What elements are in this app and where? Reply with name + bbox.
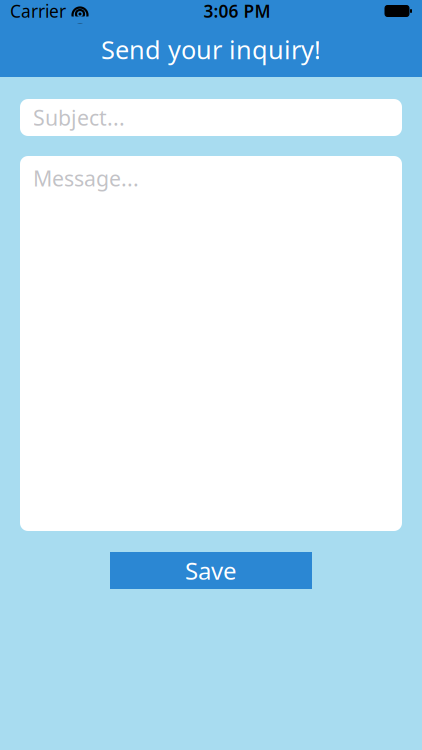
staticText: Carrier [10,0,66,22]
staticText: Save [185,555,237,586]
button[interactable]: Save [110,552,312,589]
staticText: Send your inquiry! [101,33,321,66]
staticText: 3:06 PM [203,0,270,22]
staticText: Message... [33,164,139,192]
button[interactable]: Subject... [20,99,402,136]
staticText: Subject... [33,103,125,132]
button[interactable]: Message... [20,156,402,531]
